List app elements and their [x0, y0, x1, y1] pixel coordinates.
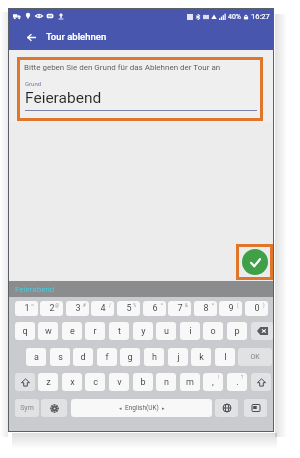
button[interactable]: b: [133, 373, 153, 391]
button[interactable]: e: [62, 322, 82, 340]
button[interactable]: OK: [238, 348, 272, 366]
staticText: o: [210, 326, 216, 337]
button[interactable]: j: [168, 348, 188, 366]
button[interactable]: n: [156, 373, 176, 391]
staticText: j: [177, 352, 180, 363]
staticText: Bitte geben Sie den Grund für das Ablehn…: [24, 63, 221, 72]
button[interactable]: r: [85, 322, 105, 340]
button[interactable]: 1: [15, 301, 38, 316]
staticText: u: [164, 326, 169, 337]
staticText: e: [70, 326, 75, 337]
button[interactable]: 6: [143, 301, 166, 316]
button[interactable]: v: [109, 373, 129, 391]
staticText: f: [105, 352, 109, 363]
button[interactable]: l: [215, 348, 235, 366]
button[interactable]: p: [227, 322, 247, 340]
staticText: h: [152, 352, 157, 363]
staticText: n: [164, 377, 169, 388]
button[interactable]: g: [120, 348, 140, 366]
button[interactable]: c: [85, 373, 105, 391]
staticText: z: [46, 377, 51, 388]
button[interactable]: shift: [15, 373, 35, 391]
button[interactable]: 0: [245, 301, 268, 316]
button[interactable]: Sym: [15, 399, 39, 417]
staticText: ▸: [162, 405, 165, 411]
button[interactable]: z: [38, 373, 58, 391]
staticText: v: [117, 377, 122, 388]
button[interactable]: shift: [251, 373, 271, 391]
staticText: ,: [212, 377, 214, 388]
staticText: d: [80, 352, 86, 363]
staticText: 0: [254, 303, 260, 314]
button[interactable]: h: [144, 348, 164, 366]
button[interactable]: w: [38, 322, 58, 340]
button[interactable]: d: [73, 348, 93, 366]
staticText: OK: [250, 353, 260, 361]
staticText: 40%: [228, 13, 241, 21]
button[interactable]: .: [227, 373, 247, 391]
staticText: #: [83, 303, 86, 308]
button[interactable]: 7: [168, 301, 191, 316]
staticText: Sym: [20, 404, 34, 412]
staticText: b: [140, 377, 146, 388]
staticText: p: [234, 326, 240, 337]
button[interactable]: a: [26, 348, 46, 366]
staticText: w: [45, 326, 52, 337]
button[interactable]: hide: [244, 399, 267, 417]
button[interactable]: 2: [40, 301, 63, 316]
staticText: Feierabend: [25, 89, 102, 107]
button[interactable]: 3: [66, 301, 89, 316]
button[interactable]: y: [133, 322, 153, 340]
button[interactable]: 8: [194, 301, 217, 316]
button[interactable]: Confirm: [242, 249, 268, 275]
staticText: 9: [228, 303, 234, 314]
staticText: ^: [161, 303, 163, 308]
button[interactable]: m: [180, 373, 200, 391]
button[interactable]: q: [15, 322, 35, 340]
staticText: English(UK): [125, 404, 159, 412]
staticText: a: [34, 352, 39, 363]
button[interactable]: ,: [203, 373, 223, 391]
staticText: 7: [177, 303, 183, 314]
staticText: Tour ablehnen: [46, 31, 107, 42]
button[interactable]: x: [62, 373, 82, 391]
staticText: 4: [100, 303, 106, 314]
staticText: x: [70, 377, 75, 388]
staticText: Grund: [25, 80, 42, 87]
button[interactable]: 9: [219, 301, 242, 316]
staticText: ?: [241, 375, 244, 380]
button[interactable]: f: [97, 348, 117, 366]
staticText: s: [58, 352, 63, 363]
staticText: m: [186, 377, 194, 388]
button[interactable]: 5: [117, 301, 140, 316]
staticText: 16:27: [251, 12, 270, 21]
staticText: &: [185, 303, 188, 308]
staticText: .: [236, 377, 239, 388]
button[interactable]: ◂: [71, 399, 212, 417]
button[interactable]: Back: [22, 28, 40, 46]
staticText: 6: [152, 303, 158, 314]
staticText: *: [212, 303, 214, 308]
staticText: ◂: [119, 405, 122, 411]
staticText: 5: [126, 303, 132, 314]
staticText: k: [199, 352, 204, 363]
staticText: /: [109, 303, 111, 308]
staticText: Feierabend: [15, 285, 55, 294]
button[interactable]: bksp: [251, 322, 273, 340]
button[interactable]: 4: [91, 301, 114, 316]
button[interactable]: t: [109, 322, 129, 340]
button[interactable]: gear: [41, 399, 67, 417]
button[interactable]: o: [203, 322, 223, 340]
staticText: (: [237, 303, 239, 308]
button[interactable]: i: [180, 322, 200, 340]
button[interactable]: k: [191, 348, 211, 366]
button[interactable]: s: [50, 348, 70, 366]
staticText: i: [189, 326, 192, 337]
staticText: l: [224, 352, 227, 363]
staticText: c: [93, 377, 98, 388]
staticText: 8: [203, 303, 209, 314]
button[interactable]: globe: [215, 399, 238, 417]
staticText: q: [22, 326, 28, 337]
button[interactable]: u: [156, 322, 176, 340]
staticText: r: [93, 326, 97, 337]
